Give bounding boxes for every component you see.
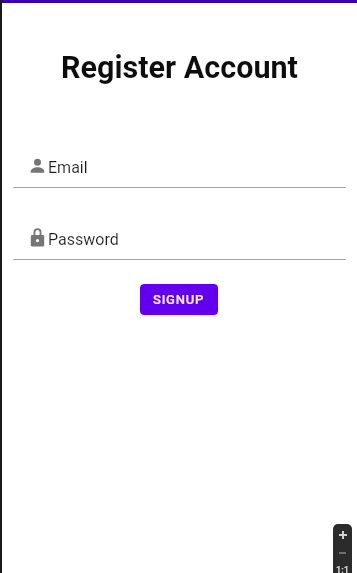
button[interactable]: Zoom out (333, 546, 352, 559)
staticText: SIGNUP (153, 292, 205, 307)
button[interactable]: SIGNUP (140, 284, 218, 315)
staticText: Email (48, 158, 88, 177)
button[interactable]: Zoom in (333, 524, 352, 546)
staticText: Password (48, 230, 119, 249)
staticText: Register Account (1, 50, 357, 86)
button[interactable]: 1:1 (333, 559, 352, 573)
staticText: 1:1 (336, 565, 349, 573)
